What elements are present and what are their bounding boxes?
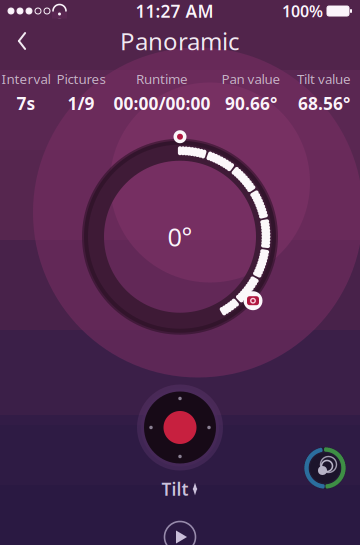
staticText: 11:27 AM — [135, 0, 213, 22]
staticText: 00:00/00:00 — [113, 92, 210, 115]
staticText: Runtime — [136, 70, 188, 88]
button[interactable]: Back — [0, 24, 44, 58]
staticText: 1/9 — [67, 92, 94, 115]
staticText: 0° — [167, 220, 192, 253]
staticText: 100% — [282, 0, 323, 22]
staticText: Panoramic — [120, 25, 240, 57]
staticText: 90.66° — [225, 92, 277, 115]
staticText: Interval — [1, 70, 50, 88]
staticText: 7s — [16, 92, 35, 115]
button[interactable]: Start panorama — [158, 515, 202, 545]
staticText: Pictures — [56, 70, 105, 88]
staticText: Pan value — [221, 70, 280, 88]
staticText: Tilt value — [297, 70, 351, 88]
staticText: 68.56° — [298, 92, 350, 115]
button[interactable]: Pan and tilt joystick — [136, 383, 224, 471]
button[interactable]: Connection status — [302, 445, 348, 491]
staticText: Tilt — [161, 477, 188, 500]
staticText — [50, 6, 52, 16]
